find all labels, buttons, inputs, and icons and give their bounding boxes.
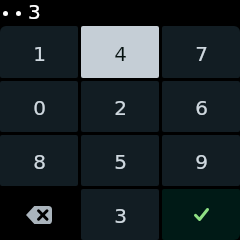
button[interactable]: 2	[81, 81, 159, 132]
staticText: 1	[33, 42, 46, 65]
staticText: 0	[33, 96, 46, 119]
staticText: 3	[28, 0, 41, 23]
staticText: 7	[195, 42, 208, 65]
button[interactable]: Confirm	[162, 189, 240, 240]
button[interactable]: 0	[0, 81, 78, 132]
button[interactable]: 1	[0, 26, 78, 78]
button[interactable]: Backspace	[0, 189, 78, 240]
staticText: 6	[195, 96, 208, 119]
button[interactable]: 5	[81, 135, 159, 186]
button[interactable]: 9	[162, 135, 240, 186]
staticText: 4	[114, 42, 127, 65]
button[interactable]: 7	[162, 26, 240, 78]
button[interactable]: 6	[162, 81, 240, 132]
button[interactable]: 3	[81, 189, 159, 240]
button[interactable]: 4	[81, 26, 159, 78]
button[interactable]: 8	[0, 135, 78, 186]
staticText: 5	[114, 150, 127, 173]
staticText: 2	[114, 96, 127, 119]
staticText: 8	[33, 150, 46, 173]
staticText: 3	[114, 204, 127, 227]
staticText: 9	[195, 150, 208, 173]
